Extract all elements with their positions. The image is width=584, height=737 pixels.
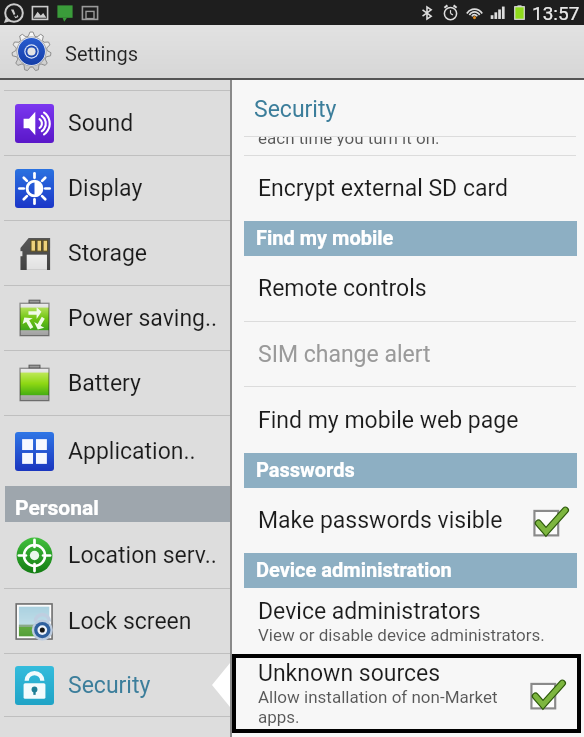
staticText: Unknown sources bbox=[258, 660, 441, 687]
staticText: Make passwords visible bbox=[258, 507, 503, 534]
button[interactable]: Security bbox=[0, 654, 230, 716]
staticText: Application.. bbox=[68, 438, 196, 465]
staticText: Display bbox=[68, 175, 143, 202]
staticText: Storage bbox=[68, 240, 148, 267]
button[interactable]: each time you turn it on. bbox=[232, 137, 584, 155]
button[interactable]: Power saving.. bbox=[0, 286, 230, 350]
staticText: Security bbox=[254, 96, 337, 123]
staticText: Allow installation of non-Market apps. bbox=[258, 687, 498, 727]
button[interactable]: Storage bbox=[0, 221, 230, 285]
staticText: View or disable device administrators. bbox=[258, 625, 545, 645]
button[interactable]: Lock screen bbox=[0, 589, 230, 653]
button[interactable]: Battery bbox=[0, 351, 230, 415]
button[interactable]: SIM change alert bbox=[232, 322, 584, 386]
staticText: Device administrators bbox=[258, 598, 481, 625]
staticText: Sound bbox=[68, 110, 134, 137]
staticText: Passwords bbox=[256, 458, 355, 481]
staticText: Settings bbox=[65, 42, 139, 65]
staticText: Power saving.. bbox=[68, 305, 218, 332]
button[interactable]: Application.. bbox=[0, 416, 230, 486]
button[interactable]: Sound bbox=[0, 91, 230, 155]
staticText: Battery bbox=[68, 370, 141, 397]
staticText: 13:57 bbox=[532, 2, 580, 24]
button[interactable]: Remote controls bbox=[232, 256, 584, 321]
staticText: Device administration bbox=[256, 558, 452, 581]
button[interactable]: Find my mobile web page bbox=[232, 387, 584, 453]
button[interactable]: Encrypt external SD card bbox=[232, 156, 584, 221]
button[interactable]: Display bbox=[0, 156, 230, 220]
staticText: Find my mobile web page bbox=[258, 407, 519, 434]
staticText: Security bbox=[68, 672, 151, 699]
button[interactable]: Make passwords visible bbox=[232, 488, 584, 553]
staticText: Lock screen bbox=[68, 608, 192, 635]
staticText: Encrypt external SD card bbox=[258, 175, 509, 202]
staticText: SIM change alert bbox=[258, 341, 431, 368]
staticText: Remote controls bbox=[258, 275, 427, 302]
staticText: Personal bbox=[15, 496, 99, 521]
button[interactable]: Location serv.. bbox=[0, 522, 230, 588]
staticText: Location serv.. bbox=[68, 542, 217, 569]
staticText: each time you turn it on. bbox=[258, 137, 440, 146]
button[interactable]: Device administrators bbox=[232, 588, 584, 654]
button[interactable]: Unknown sources bbox=[232, 654, 581, 733]
staticText: Find my mobile bbox=[256, 226, 394, 249]
